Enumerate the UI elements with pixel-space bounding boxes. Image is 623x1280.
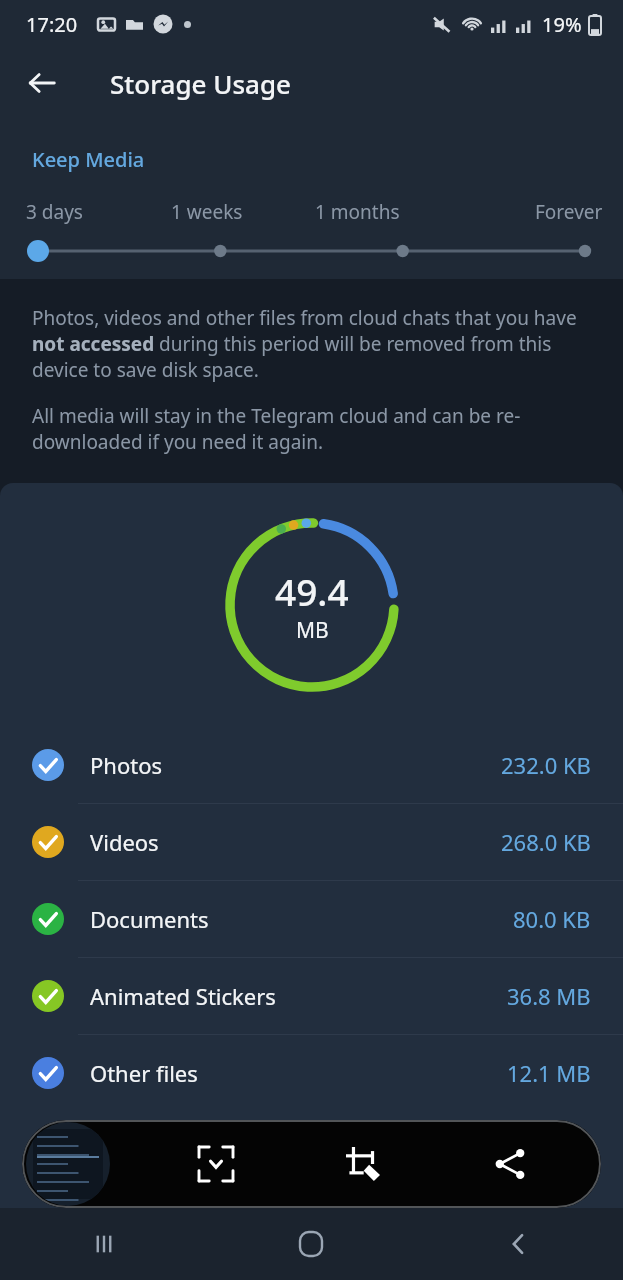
staticText: Other files [90, 1058, 507, 1088]
button[interactable]: Back [415, 1208, 623, 1280]
staticText: Photos [90, 750, 501, 780]
button[interactable]: Screenshot preview [26, 1122, 110, 1206]
staticText: All media will stay in the Telegram clou… [32, 403, 591, 455]
staticText: 232.0 KB [501, 750, 591, 780]
staticText: Photos, videos and other files from clou… [32, 305, 591, 383]
button[interactable]: Other files [0, 1035, 623, 1111]
staticText: 80.0 KB [513, 904, 591, 934]
button[interactable]: Home [207, 1208, 415, 1280]
staticText: Storage Usage [110, 66, 292, 101]
staticText: 1 weeks [171, 199, 243, 225]
staticText: 19% [542, 11, 582, 38]
staticText: 12.1 MB [507, 1058, 591, 1088]
staticText: MB [296, 616, 329, 645]
staticText: Videos [90, 827, 501, 857]
button[interactable]: Recents [0, 1208, 207, 1280]
staticText: Keep Media [32, 146, 145, 173]
staticText: Forever [535, 199, 603, 225]
button[interactable]: Keep media duration slider [0, 237, 623, 265]
staticText: 17:20 [26, 11, 78, 38]
button[interactable]: Videos [0, 804, 623, 880]
button[interactable]: Photos [0, 727, 623, 803]
staticText: Documents [90, 904, 513, 934]
button[interactable]: Documents [0, 881, 623, 957]
staticText: 268.0 KB [501, 827, 591, 857]
button[interactable]: Crop and edit [289, 1120, 436, 1208]
staticText: 49.4 [275, 566, 349, 616]
staticText: 36.8 MB [507, 981, 591, 1011]
staticText: 3 days [26, 199, 83, 225]
staticText: 1 months [315, 199, 400, 225]
button[interactable]: Back [14, 55, 70, 111]
button[interactable]: Scroll capture [142, 1120, 289, 1208]
staticText: Animated Stickers [90, 981, 507, 1011]
button[interactable]: Animated Stickers [0, 958, 623, 1034]
button[interactable]: Share [436, 1120, 583, 1208]
